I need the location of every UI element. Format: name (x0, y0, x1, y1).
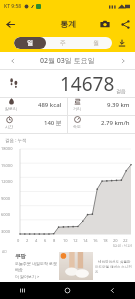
button[interactable]: Download (115, 36, 129, 50)
staticText: 9000 (1, 196, 11, 201)
staticText: 칼로리 (5, 106, 17, 111)
staticText: 걸음 (116, 88, 126, 94)
staticText: AD (2, 249, 7, 254)
staticText: 거리 (73, 106, 81, 111)
button[interactable]: 속도 (68, 116, 135, 129)
staticText: 9.39 km (107, 101, 130, 109)
button[interactable]: Next day (116, 54, 129, 67)
staticText: 0 (17, 238, 20, 243)
button[interactable]: Previous day (6, 54, 19, 67)
staticText: 통계 (60, 19, 76, 29)
staticText: 10 (63, 238, 68, 243)
button[interactable]: 시간 (0, 116, 67, 129)
staticText: 속도 (73, 124, 81, 129)
button[interactable]: 거리 (68, 98, 135, 111)
staticText: 2 (26, 238, 29, 243)
staticText: 140 분 (44, 119, 62, 127)
staticText: 16 (93, 238, 98, 243)
button[interactable]: Camera (95, 14, 115, 34)
staticText: 4 (35, 238, 38, 243)
button[interactable]: 주 (46, 37, 79, 49)
staticText: 2.79 km/h (101, 119, 130, 127)
staticText: 18 (103, 238, 108, 243)
staticText: 489 kcal (38, 101, 62, 109)
staticText: 6000 (1, 212, 11, 217)
staticText: 오늘주문 내일도착 로켓배송 (15, 261, 59, 272)
staticText: 세련되면서도 심플한 (98, 259, 131, 264)
staticText: 월 (93, 39, 99, 47)
button[interactable]: Recents (0, 282, 45, 299)
staticText: 02월 03일 토요일 (40, 56, 95, 66)
staticText: 20 (113, 238, 118, 243)
staticText: 14 (83, 238, 88, 243)
staticText: 마드모델 캔버스 스니커즈 (95, 264, 133, 274)
button[interactable]: 칼로리 (0, 98, 67, 111)
staticText: 6 (44, 238, 47, 243)
staticText: 일 (27, 39, 33, 47)
button[interactable]: 일 (14, 37, 46, 49)
staticText: 8 (53, 238, 56, 243)
button[interactable]: Back (90, 282, 135, 299)
button[interactable]: AD (0, 248, 135, 282)
staticText: 14678 (60, 71, 115, 97)
staticText: 15000 (1, 163, 13, 168)
staticText: KT 9:58 (4, 3, 22, 10)
button[interactable]: Home (45, 282, 90, 299)
staticText: 시간 (5, 124, 13, 129)
button[interactable]: Share (115, 14, 135, 34)
button[interactable]: Back (0, 14, 20, 34)
staticText: (단위 : 시간) (113, 243, 132, 248)
staticText: 12000 (1, 179, 13, 184)
staticText: 걸음 : 누적 (5, 137, 27, 143)
staticText: 주 (60, 39, 66, 47)
staticText: 12 (73, 238, 78, 243)
staticText: 3000 (1, 229, 11, 234)
button[interactable]: 월 (79, 37, 112, 49)
staticText: 더 알아보기 > (15, 274, 40, 279)
staticText: 쿠팡 (15, 253, 26, 260)
staticText: 18000 (1, 146, 13, 151)
staticText: 22 (123, 238, 128, 243)
